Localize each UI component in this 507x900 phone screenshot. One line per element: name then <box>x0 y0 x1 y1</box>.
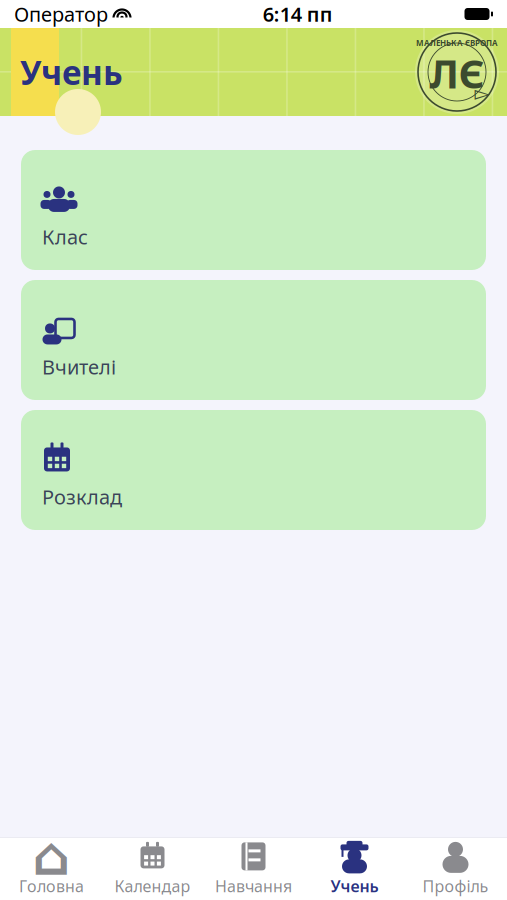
staticText: Профіль <box>422 875 488 897</box>
button[interactable]: Учень <box>304 837 405 900</box>
staticText: Оператор <box>14 1 108 27</box>
staticText: Учень <box>330 875 378 897</box>
staticText: ▻ <box>474 82 489 104</box>
button[interactable]: ⌂ <box>1 837 102 900</box>
staticText: ⌂ <box>32 826 70 887</box>
staticText: 6:14 пп <box>263 1 333 27</box>
button[interactable]: Розклад <box>21 410 486 530</box>
staticText: ЛЄ <box>429 46 484 99</box>
button[interactable]: Навчання <box>203 837 304 900</box>
staticText: Вчителі <box>42 353 116 380</box>
staticText: Навчання <box>215 875 292 897</box>
staticText: Головна <box>19 875 84 897</box>
staticText: Клас <box>42 223 88 250</box>
button[interactable]: Вчителі <box>21 280 486 400</box>
staticText: Учень <box>20 50 123 94</box>
button[interactable]: Календар <box>102 837 203 900</box>
button[interactable]: Клас <box>21 150 486 270</box>
button[interactable]: Профіль <box>405 837 506 900</box>
staticText: МАЛЕНЬКА ЄВРОПА <box>416 38 498 48</box>
staticText: Календар <box>114 875 190 897</box>
staticText: Розклад <box>42 483 122 510</box>
